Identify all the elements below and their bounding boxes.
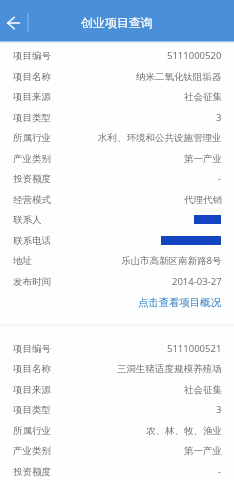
staticText: 项目来源 <box>13 384 51 396</box>
staticText: 第一产业 <box>184 445 222 457</box>
staticText: 联系人 <box>13 214 42 226</box>
staticText: 5111000521 <box>167 342 222 355</box>
staticText: 项目编号 <box>13 343 51 355</box>
staticText: 地址 <box>13 255 32 267</box>
staticText: 项目编号 <box>13 50 51 62</box>
button[interactable]: 点击查看项目概况 <box>13 292 222 313</box>
staticText: 第一产业 <box>184 153 222 165</box>
staticText: 产业类别 <box>13 153 51 165</box>
staticText: 社会征集 <box>184 384 222 396</box>
staticText: - <box>218 465 222 478</box>
staticText: 所属行业 <box>13 425 51 437</box>
staticText: 投资额度 <box>13 466 51 478</box>
staticText: 所属行业 <box>13 132 51 144</box>
staticText: 项目来源 <box>13 91 51 103</box>
staticText: 项目类型 <box>13 112 51 124</box>
staticText: 经营模式 <box>13 194 51 206</box>
staticText: 投资额度 <box>13 173 51 185</box>
staticText: 3 <box>216 403 222 416</box>
staticText: 三洞生猪适度规模养殖场 <box>117 363 222 375</box>
button[interactable]: Back <box>1 10 27 36</box>
staticText: - <box>218 172 222 185</box>
staticText: 社会征集 <box>184 91 222 103</box>
staticText: 5111000520 <box>167 49 222 62</box>
staticText: 3 <box>216 111 222 124</box>
staticText: 乐山市高新区南新路8号 <box>121 254 222 267</box>
button[interactable]: 项目编号 <box>0 327 234 480</box>
staticText: 代理代销 <box>184 194 222 206</box>
staticText: 农、林、牧、渔业 <box>146 425 222 437</box>
staticText: 2014-03-27 <box>172 275 222 288</box>
staticText: 产业类别 <box>13 445 51 457</box>
button[interactable]: 项目编号 <box>0 42 234 324</box>
staticText: 创业项目查询 <box>81 16 153 31</box>
staticText: 项目类型 <box>13 404 51 416</box>
staticText: 发布时间 <box>13 276 51 288</box>
staticText: 项目名称 <box>13 71 51 83</box>
staticText: 项目名称 <box>13 363 51 375</box>
staticText: 纳米二氧化钛阻垢器 <box>136 71 222 83</box>
staticText: 水利、环境和公共设施管理业 <box>98 132 222 144</box>
staticText: 联系电话 <box>13 235 51 247</box>
staticText: 点击查看项目概况 <box>138 296 222 309</box>
